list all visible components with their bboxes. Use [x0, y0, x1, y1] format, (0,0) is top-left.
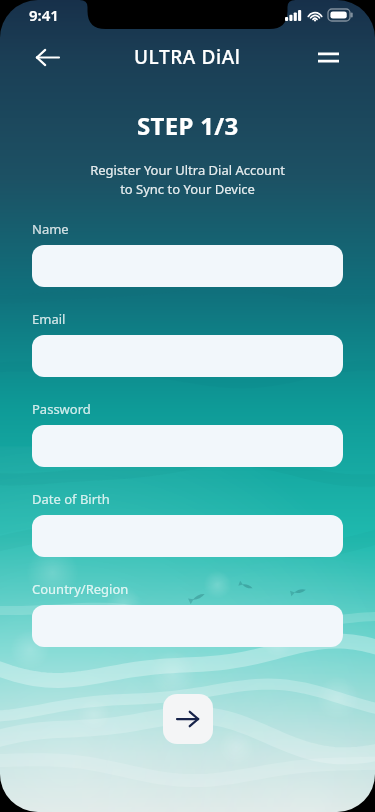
button[interactable]: Country/Region — [32, 605, 343, 647]
button[interactable]: Date of Birth — [32, 515, 343, 557]
button[interactable]: Email — [32, 335, 343, 377]
staticText: STEP 1/3 — [137, 109, 239, 142]
staticText: Date of Birth — [32, 490, 110, 508]
button[interactable]: Back — [28, 38, 66, 76]
staticText: Password — [32, 400, 91, 418]
staticText: Name — [32, 220, 69, 238]
button[interactable]: Next — [163, 694, 213, 744]
staticText: Register Your Ultra Dial Account to Sync… — [90, 161, 285, 198]
staticText: Email — [32, 310, 66, 328]
button[interactable]: Name — [32, 245, 343, 287]
staticText: 9:41 — [29, 5, 59, 25]
button[interactable]: Menu — [309, 38, 347, 76]
staticText: Country/Region — [32, 580, 129, 598]
staticText: ULTRA DiAl — [134, 44, 241, 70]
button[interactable]: Password — [32, 425, 343, 467]
